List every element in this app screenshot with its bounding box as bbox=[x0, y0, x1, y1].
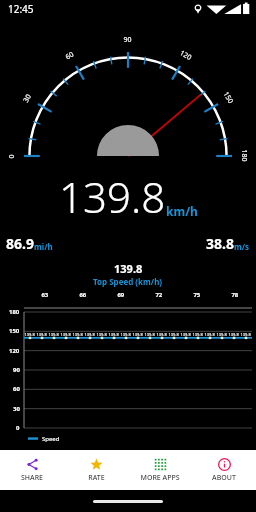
staticText: 38.8 bbox=[206, 234, 234, 253]
staticText: SHARE bbox=[21, 473, 43, 483]
staticText: km/h bbox=[166, 203, 198, 219]
button[interactable]: SHARE bbox=[0, 450, 64, 490]
button[interactable]: ABOUT bbox=[192, 450, 256, 490]
button[interactable]: RATE bbox=[64, 450, 128, 490]
staticText: ABOUT bbox=[212, 473, 236, 483]
staticText: RATE bbox=[88, 473, 105, 483]
staticText: 86.9 bbox=[6, 234, 34, 253]
staticText: Top Speed (km/h) bbox=[93, 276, 163, 287]
staticText: MORE APPS bbox=[140, 473, 180, 483]
staticText: 139.8 bbox=[59, 168, 166, 224]
staticText: mi/h bbox=[34, 241, 53, 252]
button[interactable]: MORE APPS bbox=[128, 450, 192, 490]
staticText: 12:45 bbox=[8, 2, 34, 16]
staticText: 139.8 bbox=[114, 261, 143, 276]
staticText: m/s bbox=[234, 241, 250, 252]
